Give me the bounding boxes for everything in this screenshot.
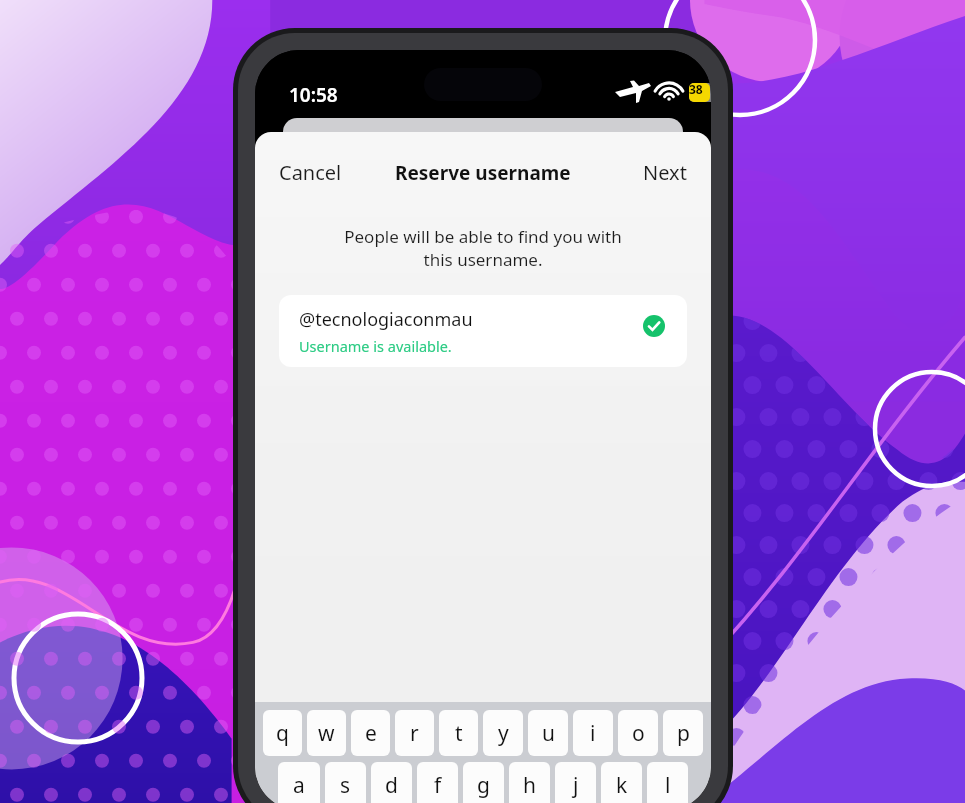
staticText: t	[455, 719, 463, 748]
staticText: Username is available.	[299, 336, 452, 356]
button[interactable]: Cancel	[267, 152, 357, 192]
button[interactable]: k	[601, 762, 642, 803]
button[interactable]: g	[463, 762, 504, 803]
button[interactable]: u	[528, 710, 568, 756]
staticText: u	[542, 719, 555, 748]
staticText: a	[293, 771, 305, 800]
staticText: r	[410, 719, 419, 748]
button[interactable]: p	[663, 710, 703, 756]
staticText: k	[616, 771, 628, 800]
staticText: o	[632, 719, 645, 748]
staticText: s	[340, 771, 351, 800]
button[interactable]: d	[371, 762, 412, 803]
button[interactable]: Next	[611, 152, 699, 192]
button[interactable]: a	[278, 762, 320, 803]
staticText: Reserve username	[395, 160, 571, 186]
staticText: Cancel	[279, 159, 342, 186]
staticText: q	[276, 719, 289, 748]
button[interactable]: r	[395, 710, 434, 756]
button[interactable]: o	[618, 710, 658, 756]
staticText: w	[318, 719, 335, 748]
staticText: j	[573, 771, 579, 800]
staticText: f	[434, 771, 442, 800]
button[interactable]: @tecnologiaconmau	[279, 295, 687, 367]
staticText: d	[385, 771, 398, 800]
button[interactable]: t	[439, 710, 478, 756]
staticText: 10:58	[289, 82, 338, 108]
button[interactable]: l	[647, 762, 688, 803]
button[interactable]: s	[325, 762, 366, 803]
button[interactable]: f	[417, 762, 458, 803]
staticText: 38	[689, 81, 703, 97]
button[interactable]: i	[573, 710, 613, 756]
button[interactable]: q	[263, 710, 302, 756]
staticText: e	[365, 719, 377, 748]
staticText: People will be able to find you with thi…	[313, 225, 653, 271]
staticText: h	[523, 771, 536, 800]
button[interactable]: w	[307, 710, 346, 756]
button[interactable]: h	[509, 762, 550, 803]
staticText: i	[590, 719, 596, 748]
button[interactable]: y	[483, 710, 523, 756]
staticText: y	[498, 719, 509, 748]
staticText: p	[677, 719, 690, 748]
staticText: @tecnologiaconmau	[299, 307, 473, 332]
button[interactable]: j	[555, 762, 596, 803]
staticText: Next	[643, 159, 687, 186]
button[interactable]: e	[351, 710, 390, 756]
staticText: l	[665, 771, 671, 800]
staticText: g	[477, 771, 490, 800]
other: Available	[643, 315, 665, 337]
